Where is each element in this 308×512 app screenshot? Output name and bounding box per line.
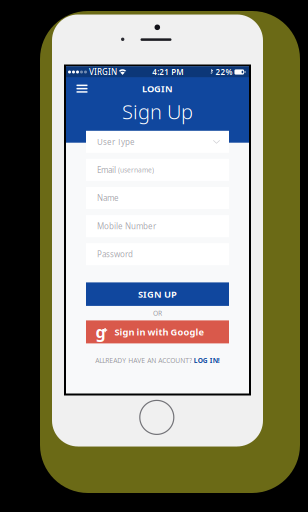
- button[interactable]: Mobile Number: [86, 215, 229, 237]
- staticText: LOGIN: [142, 82, 173, 95]
- staticText: SIGN UP: [138, 288, 177, 300]
- staticText: Mobile Number: [97, 221, 156, 231]
- staticText: OR: [153, 309, 162, 318]
- button[interactable]: Name: [86, 187, 229, 209]
- staticText: Sign in with Google: [114, 326, 204, 338]
- button[interactable]: Sign in with Google: [86, 320, 229, 343]
- button[interactable]: Email: [86, 159, 229, 181]
- button[interactable]: Password: [86, 243, 229, 265]
- staticText: Password: [97, 249, 133, 259]
- staticText: LOG IN!: [194, 356, 220, 365]
- staticText: 22%: [213, 67, 234, 77]
- button[interactable]: User Type: [86, 131, 229, 153]
- staticText: g: [95, 321, 105, 342]
- button[interactable]: SIGN UP: [86, 282, 229, 306]
- button[interactable]: Menu: [70, 78, 94, 100]
- staticText: Name: [97, 193, 119, 203]
- staticText: VIRGIN: [87, 67, 119, 77]
- staticText: ALLREADY HAVE AN ACCOUNT?: [95, 356, 192, 365]
- staticText: (username): [116, 165, 154, 174]
- staticText: 4:21 PM: [152, 67, 183, 77]
- staticText: Sign Up: [122, 98, 193, 125]
- staticText: User Type: [97, 136, 135, 147]
- button[interactable]: ALLREADY HAVE AN ACCOUNT?: [95, 354, 220, 366]
- staticText: Email: [97, 165, 116, 175]
